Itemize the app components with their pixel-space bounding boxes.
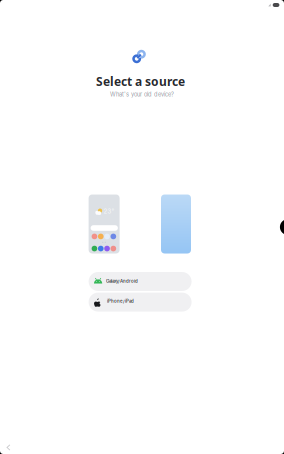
button[interactable]: Galaxy/Android <box>89 272 192 291</box>
staticText: iPhone/iPad <box>107 299 134 304</box>
staticText: Select a source <box>96 73 185 89</box>
staticText: 23° <box>103 208 114 215</box>
staticText: Galaxy/Android <box>106 279 138 284</box>
staticText: What's your old device? <box>110 91 174 98</box>
button[interactable]: iPhone/iPad <box>89 293 192 312</box>
